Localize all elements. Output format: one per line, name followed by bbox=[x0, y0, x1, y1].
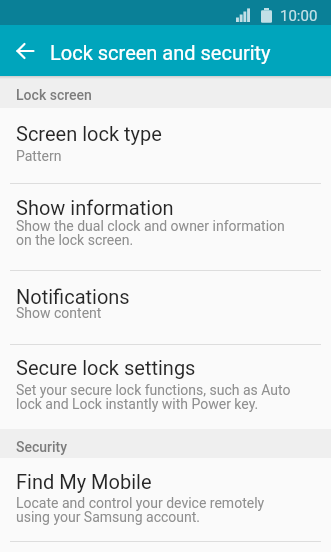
staticText: Screen lock type bbox=[16, 122, 162, 145]
staticText: Find My Mobile bbox=[16, 470, 152, 493]
button[interactable] bbox=[17, 43, 34, 59]
button[interactable]: Secure lock settings bbox=[0, 345, 331, 429]
button[interactable]: Notifications bbox=[0, 271, 331, 345]
staticText: Pattern bbox=[16, 148, 62, 164]
staticText: Locate and control your device remotely … bbox=[16, 495, 265, 526]
staticText: Notifications bbox=[16, 285, 130, 308]
staticText: Show content bbox=[16, 305, 102, 321]
staticText: Show the dual clock and owner informatio… bbox=[16, 218, 285, 249]
button[interactable]: Show information bbox=[0, 184, 331, 271]
staticText: Show information bbox=[16, 196, 174, 219]
button[interactable]: Find My Mobile bbox=[0, 458, 331, 542]
staticText: 10:00 bbox=[280, 7, 318, 25]
staticText: Security bbox=[16, 439, 68, 455]
button[interactable]: Screen lock type bbox=[0, 108, 331, 184]
staticText: Secure lock settings bbox=[16, 356, 196, 379]
staticText: Lock screen bbox=[16, 87, 92, 103]
staticText: Set your secure lock functions, such as … bbox=[16, 382, 291, 413]
staticText: Lock screen and security bbox=[50, 41, 271, 64]
